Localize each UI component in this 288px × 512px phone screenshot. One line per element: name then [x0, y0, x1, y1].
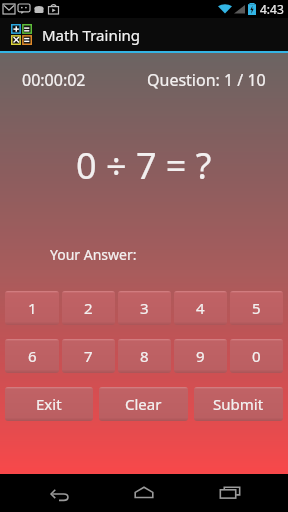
button[interactable]: 4 — [174, 291, 227, 325]
staticText: 0 ÷ 7 = ? — [76, 141, 212, 190]
button[interactable]: Back — [32, 474, 86, 512]
button[interactable]: Clear — [99, 387, 188, 421]
staticText: 5 — [252, 298, 261, 318]
staticText: 9 — [196, 346, 205, 366]
button[interactable]: Recent apps — [203, 474, 257, 512]
staticText: 4:43 — [260, 1, 284, 17]
staticText: 0 — [252, 346, 261, 366]
staticText: 4 — [196, 298, 205, 318]
button[interactable]: 5 — [230, 291, 283, 325]
staticText: Submit — [213, 394, 264, 414]
staticText: Clear — [125, 394, 162, 414]
staticText: 3 — [140, 298, 149, 318]
staticText: 7 — [84, 346, 93, 366]
button[interactable]: 7 — [62, 339, 115, 373]
button[interactable]: 6 — [5, 339, 59, 373]
button[interactable]: 0 — [230, 339, 283, 373]
staticText: Question: 1 / 10 — [147, 69, 266, 91]
button[interactable]: Exit — [5, 387, 93, 421]
staticText: Exit — [36, 394, 62, 414]
button[interactable]: 3 — [118, 291, 171, 325]
staticText: 8 — [140, 346, 149, 366]
button[interactable]: 1 — [5, 291, 59, 325]
staticText: 2 — [84, 298, 93, 318]
staticText: Your Answer: — [50, 245, 137, 264]
button[interactable]: 8 — [118, 339, 171, 373]
button[interactable]: Submit — [194, 387, 283, 421]
staticText: 00:00:02 — [22, 69, 86, 91]
staticText: 6 — [28, 346, 37, 366]
button[interactable]: 2 — [62, 291, 115, 325]
staticText: Math Training — [42, 25, 141, 45]
button[interactable]: Home — [117, 474, 171, 512]
button[interactable]: 9 — [174, 339, 227, 373]
staticText: 1 — [28, 298, 37, 318]
